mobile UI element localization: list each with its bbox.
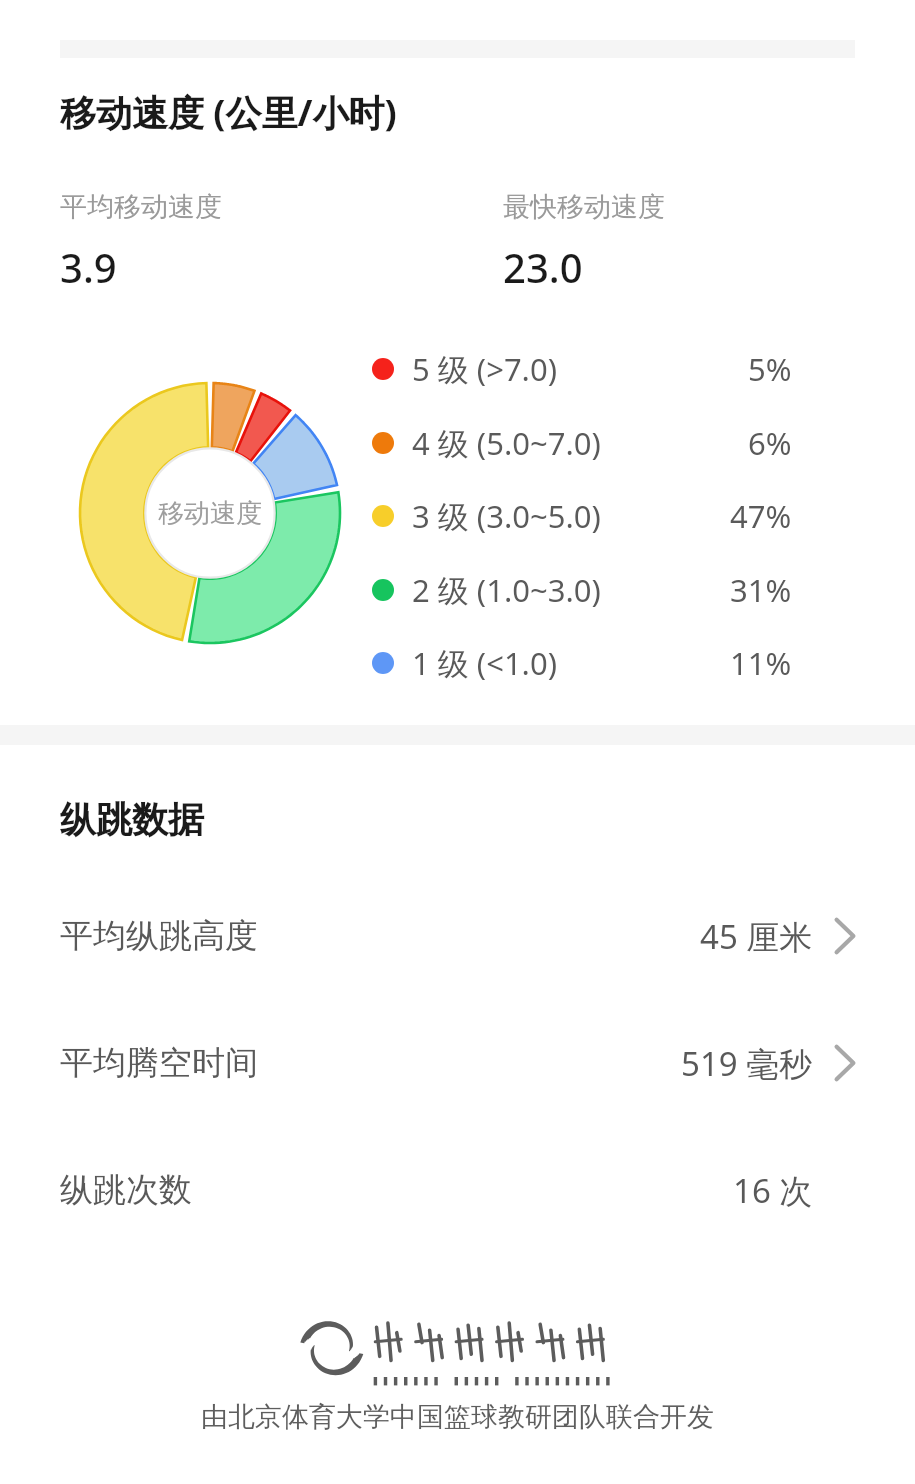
staticText: 23.0 [503, 240, 583, 294]
staticText: 11% [730, 642, 792, 684]
staticText: 纵跳次数 [60, 1169, 192, 1211]
button[interactable]: 1 级 (<1.0) [372, 639, 792, 687]
staticText: 3 级 (3.0~5.0) [412, 495, 601, 537]
staticText: 4 级 (5.0~7.0) [412, 422, 601, 464]
staticText: 16 次 [733, 1168, 813, 1213]
button[interactable]: 5 级 (>7.0) [372, 345, 792, 393]
staticText: 3.9 [60, 240, 117, 294]
staticText: 最快移动速度 [503, 190, 665, 224]
staticText: 47% [730, 495, 792, 537]
button[interactable]: 4 级 (5.0~7.0) [372, 419, 792, 467]
staticText: 6% [748, 422, 792, 464]
button[interactable]: 平均纵跳高度 [0, 900, 915, 972]
button[interactable]: 3 级 (3.0~5.0) [372, 492, 792, 540]
staticText: 31% [730, 569, 792, 611]
staticText: 由北京体育大学中国篮球教研团队联合开发 [201, 1400, 714, 1434]
staticText: 平均腾空时间 [60, 1042, 258, 1084]
staticText: 纵跳数据 [60, 797, 204, 842]
staticText: 移动速度 [158, 497, 262, 530]
button[interactable]: 2 级 (1.0~3.0) [372, 566, 792, 614]
other: 查看详情 [835, 1045, 855, 1081]
staticText: 平均移动速度 [60, 190, 222, 224]
button[interactable]: 纵跳次数 [0, 1154, 915, 1226]
staticText: 5 级 (>7.0) [412, 348, 557, 390]
staticText: 移动速度 (公里/小时) [60, 88, 397, 137]
staticText: 45 厘米 [700, 914, 813, 959]
staticText: 519 毫秒 [681, 1041, 813, 1086]
staticText: 5% [748, 348, 792, 390]
staticText: 平均纵跳高度 [60, 915, 258, 957]
other: 查看详情 [835, 918, 855, 954]
staticText: 1 级 (<1.0) [412, 642, 557, 684]
button[interactable]: 平均腾空时间 [0, 1027, 915, 1099]
staticText: 2 级 (1.0~3.0) [412, 569, 601, 611]
